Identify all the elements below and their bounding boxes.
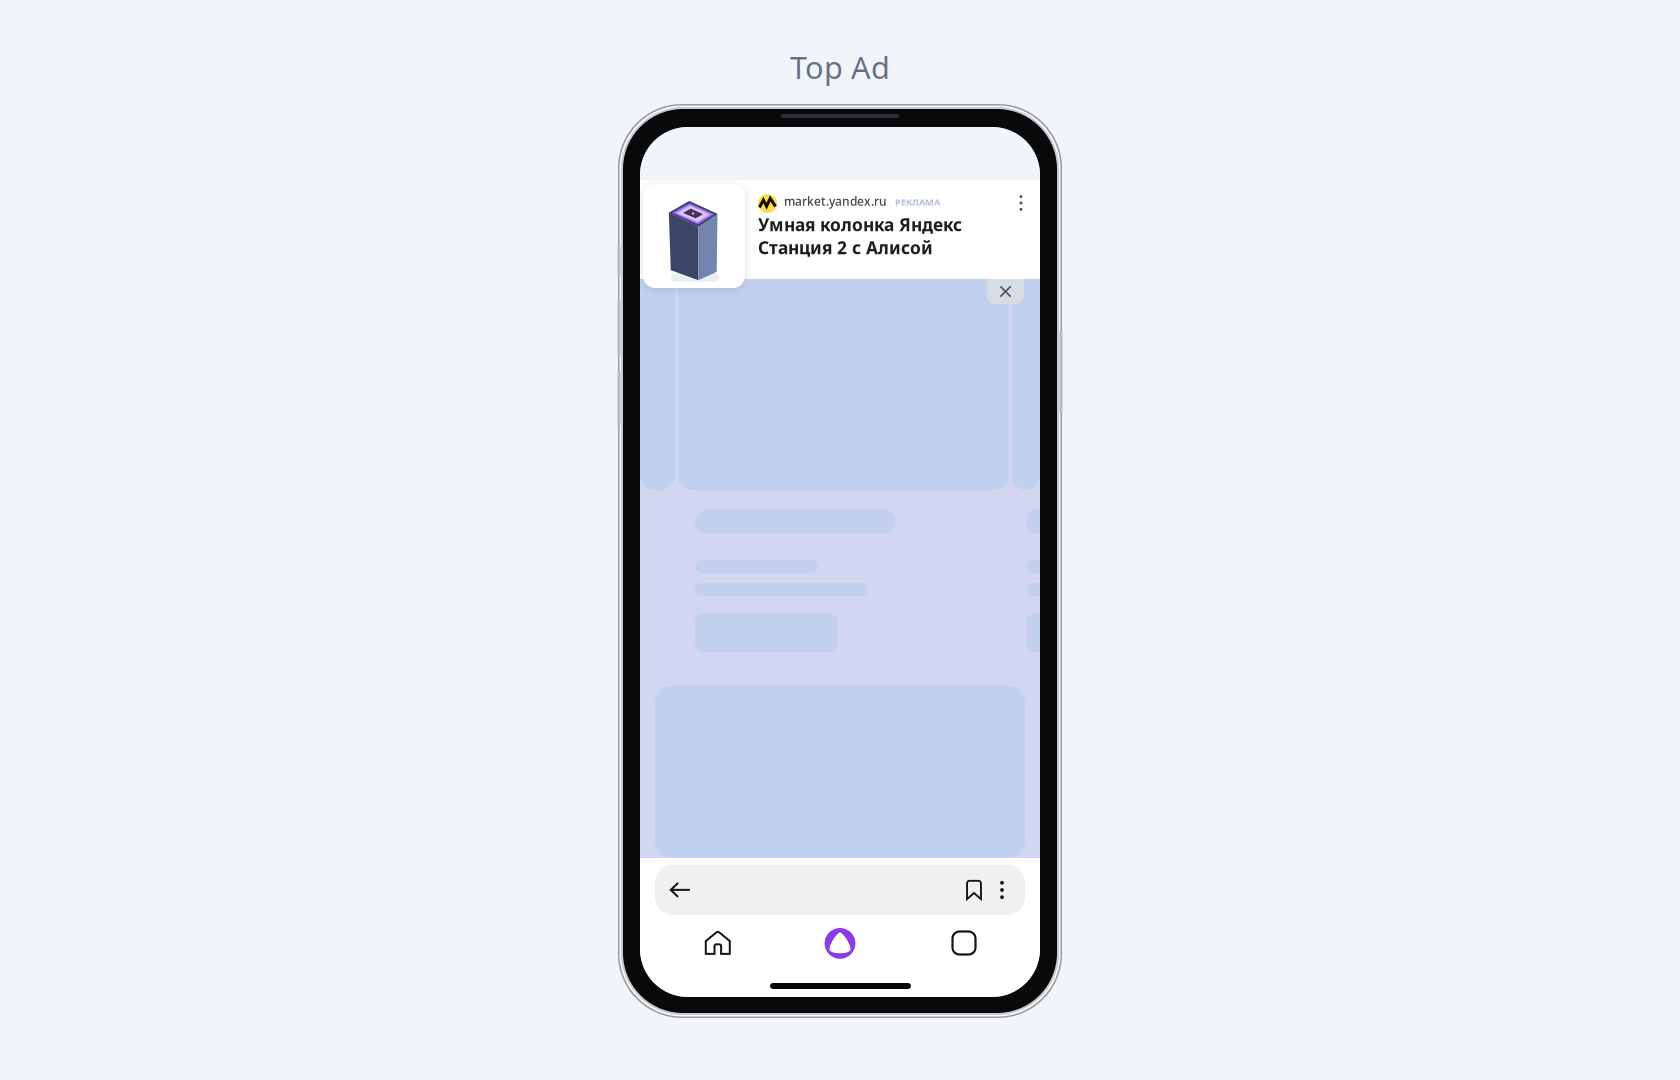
button[interactable]: Home — [678, 921, 758, 965]
button[interactable]: Ad: Умная колонка Яндекс Станция 2 с Али… — [640, 180, 1040, 279]
button[interactable]: Tabs — [924, 921, 1004, 965]
button[interactable]: Ad options — [1014, 192, 1028, 214]
button[interactable]: Address bar — [655, 865, 1025, 915]
button[interactable]: Bookmarks — [962, 877, 986, 903]
staticText: Умная колонка Яндекс — [758, 213, 962, 236]
button[interactable]: More options — [992, 877, 1012, 903]
button[interactable]: Close ad — [987, 270, 1024, 304]
staticText: Top Ad — [790, 47, 890, 87]
staticText: Станция 2 с Алисой — [758, 236, 933, 259]
staticText: market.yandex.ru — [784, 193, 887, 209]
button[interactable]: Back — [665, 878, 695, 902]
button[interactable]: Alice assistant — [800, 921, 880, 965]
staticText: РЕКЛАМА — [895, 196, 940, 208]
